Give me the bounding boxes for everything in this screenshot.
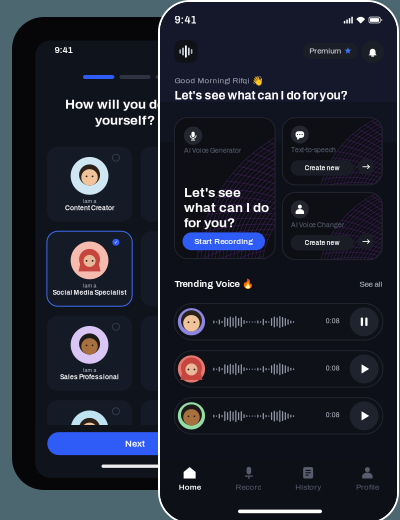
- button[interactable]: Home: [160, 466, 219, 491]
- staticText: I am a: [82, 367, 96, 373]
- staticText: Trending Voice: [174, 279, 239, 289]
- staticText: AI Voice Changer: [291, 221, 344, 228]
- staticText: Start Recording: [194, 237, 253, 246]
- button[interactable]: AI Voice Generator: [174, 118, 275, 259]
- staticText: Next: [125, 439, 145, 448]
- button[interactable]: 0:08: [174, 351, 383, 387]
- button[interactable]: I am a: [141, 400, 226, 475]
- staticText: 0:08: [326, 317, 340, 325]
- button[interactable]: Notifications: [361, 40, 384, 63]
- button[interactable]: Next: [47, 432, 223, 455]
- staticText: for you?: [184, 216, 235, 230]
- button[interactable]: See all: [359, 280, 382, 288]
- staticText: I am a: [83, 452, 97, 457]
- staticText: Teacher: [170, 204, 196, 211]
- button[interactable]: I am a: [47, 147, 132, 222]
- staticText: Profile: [356, 483, 379, 491]
- staticText: Home: [179, 483, 201, 491]
- button[interactable]: Text-to-speech: [282, 118, 382, 185]
- button[interactable]: 0:08: [174, 398, 383, 434]
- staticText: Designer: [169, 373, 198, 380]
- button[interactable]: I am a: [47, 316, 132, 391]
- staticText: 9:41: [174, 14, 196, 26]
- staticText: I am a: [176, 283, 190, 288]
- staticText: Premium: [309, 47, 341, 55]
- staticText: Let's see what can I do for you?: [174, 89, 347, 102]
- button[interactable]: I am a: [141, 147, 226, 222]
- staticText: See all: [359, 280, 382, 288]
- staticText: Social Media Specialist: [52, 289, 126, 296]
- staticText: 0:08: [326, 365, 340, 372]
- staticText: I am a: [82, 283, 96, 288]
- staticText: Text-to-speech: [291, 147, 336, 154]
- button[interactable]: Record: [219, 466, 278, 491]
- button[interactable]: App logo: [174, 40, 197, 63]
- staticText: Content Creator: [65, 204, 114, 211]
- button[interactable]: Profile: [338, 466, 397, 491]
- button[interactable]: I am a: [47, 231, 132, 306]
- staticText: Create new: [304, 239, 339, 246]
- staticText: Sales Professional: [60, 373, 119, 380]
- staticText: Create new: [304, 164, 339, 171]
- button[interactable]: I am a: [47, 400, 132, 475]
- staticText: I am a: [82, 198, 96, 204]
- button[interactable]: 0:08: [174, 303, 383, 340]
- button[interactable]: AI Voice Changer: [282, 192, 382, 260]
- button[interactable]: History: [278, 466, 338, 491]
- staticText: 🔥: [242, 279, 254, 289]
- staticText: Record: [235, 483, 262, 491]
- staticText: How will you describe: [65, 97, 205, 111]
- staticText: I am a: [176, 367, 190, 373]
- staticText: ✓: [114, 239, 118, 245]
- staticText: 0:08: [326, 412, 340, 419]
- staticText: 👋: [252, 75, 264, 86]
- staticText: Let's see: [184, 185, 241, 199]
- staticText: yourself? 🙋: [95, 112, 175, 128]
- staticText: 9:41: [54, 45, 72, 55]
- button[interactable]: I am a: [141, 231, 226, 306]
- staticText: Good Morning! Rifqi: [174, 76, 249, 85]
- staticText: AI Voice Generator: [184, 147, 241, 154]
- staticText: what can I do: [184, 200, 269, 215]
- button[interactable]: I am a: [141, 316, 226, 391]
- button[interactable]: Premium: [303, 43, 358, 59]
- staticText: History: [295, 483, 321, 491]
